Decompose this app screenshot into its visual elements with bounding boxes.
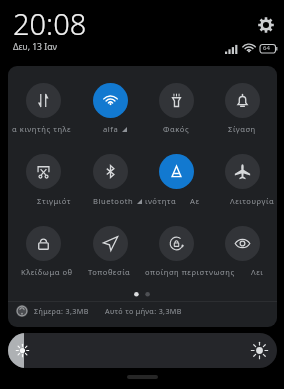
button[interactable]: Φακός — [144, 79, 208, 133]
button[interactable]: alfa — [78, 79, 142, 133]
button[interactable]: Bluetooth — [78, 150, 142, 204]
staticText: Φακός — [163, 124, 190, 134]
staticText: Κλείδωμα οθ — [21, 267, 73, 277]
staticText: Σίγαση — [228, 124, 256, 134]
button[interactable]: Σήμερα: 3,3MB — [16, 303, 182, 318]
staticText: alfa — [103, 124, 119, 134]
button[interactable]: Λειτουργία — [210, 150, 274, 204]
button[interactable]: Τοποθεσία — [78, 222, 142, 276]
staticText: 64 — [263, 44, 270, 52]
button[interactable]: Settings — [257, 16, 275, 34]
staticText: Δευ, 13 Ιαν — [13, 41, 57, 53]
button[interactable]: Σίγαση — [210, 79, 274, 133]
button[interactable]: οποίηση περιστ — [144, 222, 208, 276]
staticText: ινότητα — [145, 196, 177, 206]
button[interactable]: Στιγμιότυ — [11, 150, 75, 204]
staticText: Σήμερα: 3,3MB — [34, 306, 89, 316]
staticText: Λει — [251, 267, 264, 277]
button[interactable]: Brightness — [8, 333, 277, 368]
staticText: 20:08 — [13, 4, 87, 43]
staticText: Bluetooth — [93, 196, 134, 206]
staticText: Λειτουργία — [230, 196, 275, 206]
button[interactable]: Κλείδωμα οθ — [11, 222, 75, 276]
staticText: Αυτό το μήνα: 3,3MB — [105, 306, 182, 316]
staticText: α κινητής τηλε — [12, 124, 72, 134]
button[interactable]: νωσης — [210, 222, 274, 276]
button[interactable]: ινότητα — [144, 150, 208, 204]
staticText: νωσης — [209, 267, 235, 277]
staticText: Τοποθεσία — [88, 267, 131, 277]
button[interactable]: α κινητής τηλε — [11, 79, 75, 133]
staticText: Αε — [190, 196, 200, 206]
staticText: οποίηση περιστ — [145, 267, 209, 277]
staticText: Στιγμιότ — [37, 196, 72, 206]
